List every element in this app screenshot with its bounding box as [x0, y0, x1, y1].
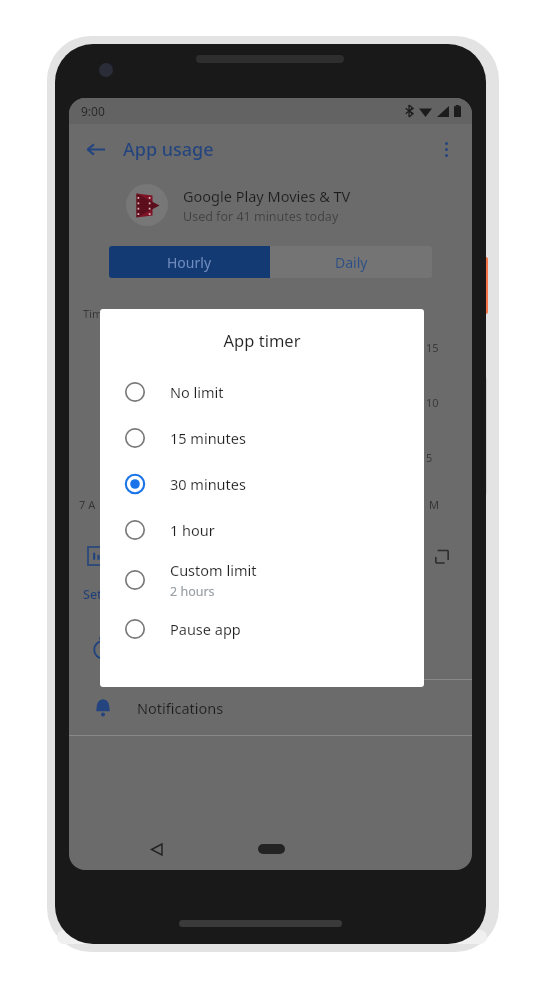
button[interactable]: Open — [431, 545, 453, 567]
staticText: Settings — [83, 586, 132, 603]
button[interactable]: Chart — [86, 545, 108, 567]
button[interactable]: Back — [133, 828, 179, 870]
staticText: 1 hour — [170, 520, 215, 540]
button[interactable]: Home — [241, 828, 301, 870]
button[interactable]: Notifications — [69, 680, 472, 735]
staticText: 10 — [426, 395, 439, 410]
button[interactable]: 30 minutes — [100, 461, 424, 507]
button[interactable]: Daily — [270, 246, 432, 278]
staticText: No limit — [170, 382, 224, 402]
staticText: 15 minutes — [170, 428, 246, 448]
button[interactable]: Custom limit — [100, 553, 424, 606]
button[interactable]: Hourly — [109, 246, 270, 278]
staticText: 7 A — [79, 497, 96, 512]
button[interactable]: Back — [75, 129, 115, 169]
staticText: App timer — [100, 329, 424, 351]
staticText: Used for 41 minutes today — [183, 208, 339, 225]
staticText: App timer — [137, 629, 205, 649]
staticText: Hourly — [167, 253, 212, 272]
staticText: Tim — [83, 306, 103, 321]
button[interactable]: 1 hour — [100, 507, 424, 553]
staticText: 9:00 — [81, 103, 105, 119]
staticText: 2 hours — [170, 583, 215, 600]
staticText: Google Play Movies & TV — [183, 186, 351, 206]
staticText: Daily — [335, 253, 368, 272]
button[interactable]: App timer — [69, 617, 472, 679]
staticText: 5 — [426, 450, 433, 465]
button[interactable]: Pause app — [100, 606, 424, 652]
staticText: 15 — [426, 340, 439, 355]
staticText: 30 minutes — [170, 474, 246, 494]
button[interactable]: No limit — [100, 369, 424, 415]
button[interactable]: 15 minutes — [100, 415, 424, 461]
staticText: Pause app — [170, 619, 241, 639]
staticText: Custom limit — [170, 560, 257, 580]
staticText: M — [429, 497, 439, 512]
button[interactable]: More options — [426, 129, 466, 169]
staticText: Notifications — [137, 698, 224, 718]
staticText: App usage — [123, 137, 214, 162]
